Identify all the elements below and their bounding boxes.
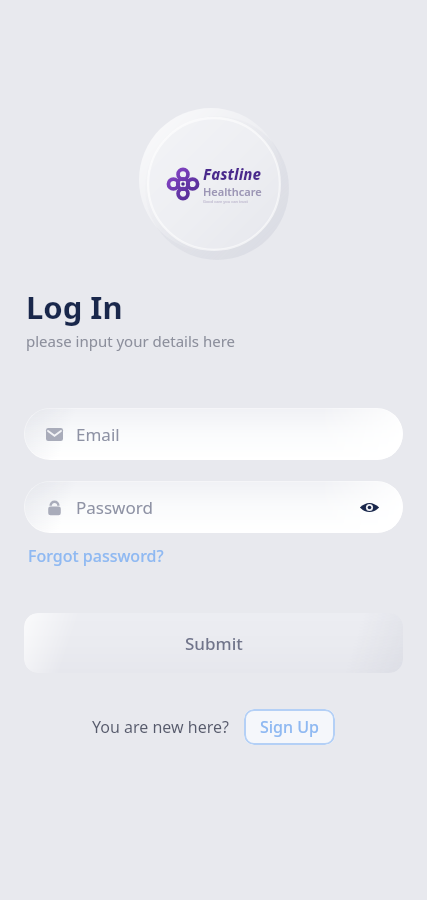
button[interactable]: Show password bbox=[355, 493, 383, 521]
staticText: Submit bbox=[185, 632, 243, 655]
staticText: Password bbox=[76, 496, 153, 519]
button[interactable]: Password bbox=[24, 481, 403, 533]
staticText: You are new here? bbox=[92, 716, 229, 738]
button[interactable]: Email bbox=[24, 408, 403, 460]
staticText: please input your details here bbox=[26, 331, 235, 351]
staticText: Log In bbox=[26, 286, 123, 328]
staticText: Email bbox=[76, 423, 120, 446]
button[interactable]: Submit bbox=[24, 613, 403, 673]
staticText: Sign Up bbox=[260, 716, 319, 738]
staticText: Healthcare bbox=[203, 184, 262, 199]
button[interactable]: Sign Up bbox=[244, 709, 335, 745]
staticText: Forgot password? bbox=[28, 545, 164, 567]
staticText: Good care you can trust bbox=[203, 199, 248, 204]
button[interactable]: Forgot password? bbox=[26, 540, 166, 572]
staticText: Fastline bbox=[203, 164, 262, 184]
